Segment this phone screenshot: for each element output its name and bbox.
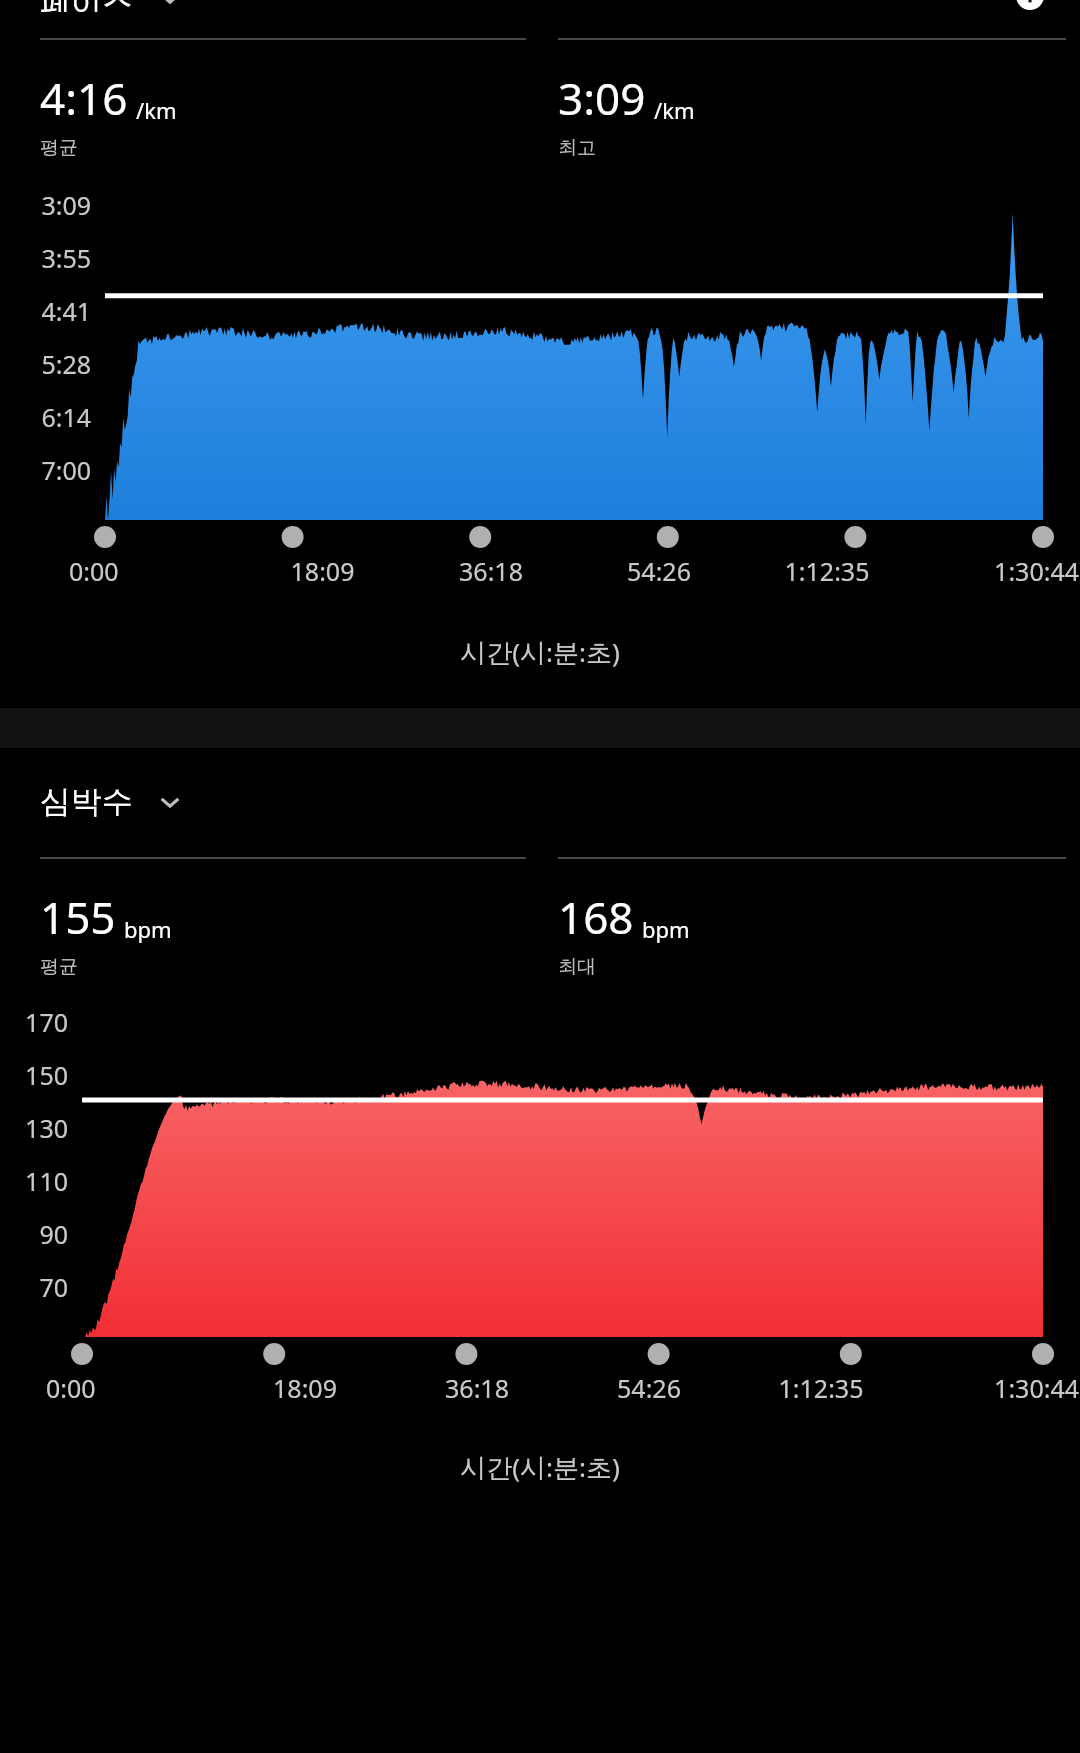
staticText: 130: [0, 1111, 68, 1145]
staticText: 0:00: [69, 554, 238, 588]
staticText: 1:30:44: [907, 1371, 1079, 1405]
staticText: 7:00: [0, 453, 91, 487]
staticText: 평균: [40, 136, 78, 160]
staticText: 3:55: [0, 241, 91, 275]
staticText: 최고: [558, 136, 596, 160]
staticText: 168: [558, 887, 634, 947]
staticText: 18:09: [238, 554, 407, 588]
staticText: bpm: [124, 914, 172, 944]
staticText: 36:18: [407, 554, 575, 588]
button[interactable]: 페이스: [0, 0, 183, 12]
staticText: 시간(시:분:초): [0, 634, 1080, 670]
staticText: 최대: [558, 955, 596, 979]
staticText: 1:30:44: [911, 554, 1079, 588]
staticText: 4:16: [40, 68, 128, 128]
staticText: 54:26: [575, 554, 743, 588]
staticText: 1:12:35: [743, 554, 911, 588]
staticText: bpm: [642, 914, 690, 944]
staticText: 54:26: [563, 1371, 735, 1405]
staticText: 0:00: [46, 1371, 219, 1405]
staticText: 170: [0, 1005, 68, 1039]
staticText: 5:28: [0, 347, 91, 381]
staticText: 6:14: [0, 400, 91, 434]
staticText: 90: [0, 1217, 68, 1251]
staticText: 심박수: [40, 782, 133, 821]
staticText: /km: [136, 95, 177, 125]
button[interactable]: Information: [1016, 0, 1056, 10]
staticText: 36:18: [391, 1371, 563, 1405]
staticText: 18:09: [219, 1371, 391, 1405]
staticText: 3:09: [558, 68, 646, 128]
staticText: 평균: [40, 955, 78, 979]
staticText: 4:41: [0, 294, 91, 328]
staticText: 110: [0, 1164, 68, 1198]
staticText: /km: [654, 95, 695, 125]
button[interactable]: 심박수: [0, 772, 1080, 831]
staticText: 1:12:35: [735, 1371, 907, 1405]
staticText: 70: [0, 1270, 68, 1304]
staticText: 150: [0, 1058, 68, 1092]
staticText: 페이스: [40, 0, 133, 12]
staticText: 시간(시:분:초): [0, 1449, 1080, 1485]
staticText: 155: [40, 887, 116, 947]
staticText: 3:09: [0, 188, 91, 222]
